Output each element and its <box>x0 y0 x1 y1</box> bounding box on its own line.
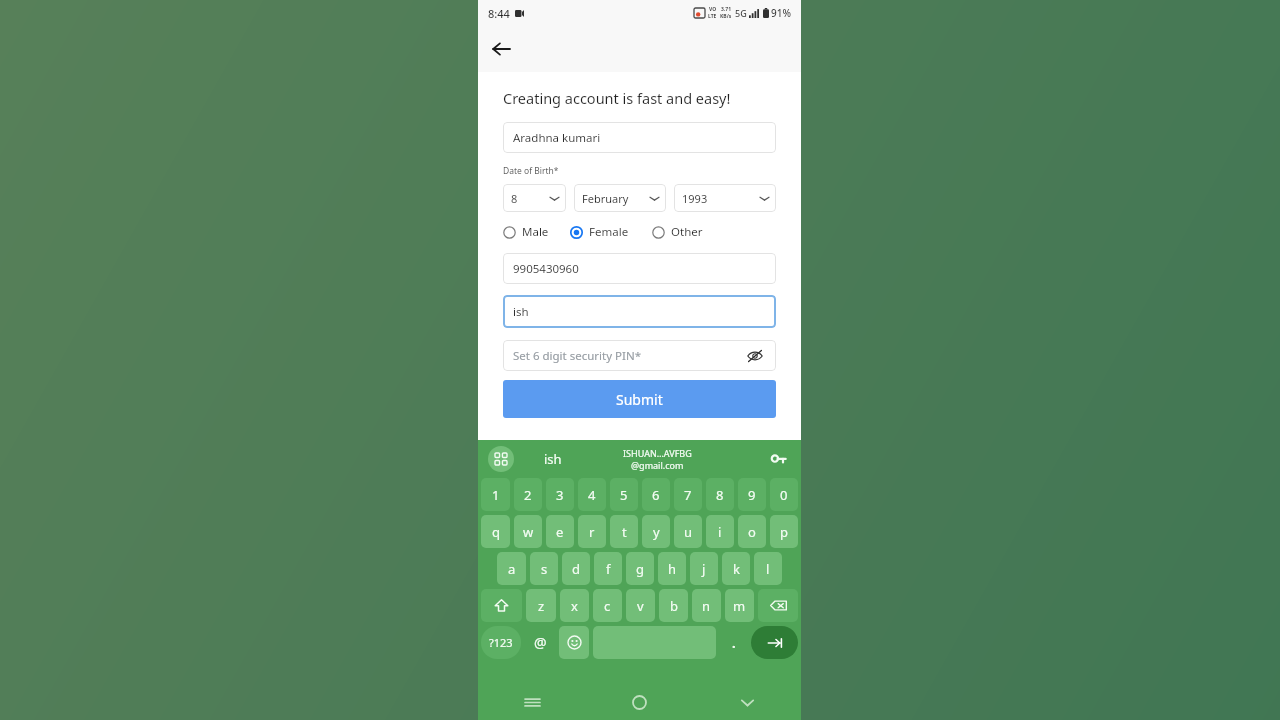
button[interactable]: f <box>594 552 622 585</box>
staticText: k <box>733 560 740 578</box>
button[interactable]: 1993 <box>674 184 776 212</box>
button[interactable]: 9 <box>738 478 766 511</box>
button[interactable]: t <box>610 515 638 548</box>
staticText: h <box>668 560 677 578</box>
staticText: w <box>523 523 534 541</box>
button[interactable]: q <box>481 515 510 548</box>
button[interactable]: Enter <box>751 626 798 659</box>
button[interactable]: 1 <box>481 478 510 511</box>
button[interactable]: v <box>626 589 655 622</box>
button[interactable]: y <box>642 515 670 548</box>
button[interactable]: Male <box>503 221 549 243</box>
staticText: d <box>572 560 580 578</box>
staticText: Submit <box>616 390 663 409</box>
button[interactable]: ish <box>514 440 592 478</box>
staticText: KB/s <box>720 13 732 20</box>
staticText: e <box>556 523 564 541</box>
staticText: o <box>748 523 756 541</box>
button[interactable]: ISHUAN…AVFBG <box>592 440 722 478</box>
button[interactable]: Aradhna kumari <box>503 122 776 153</box>
staticText: 91% <box>771 6 791 20</box>
button[interactable]: k <box>722 552 750 585</box>
staticText: Date of Birth* <box>503 165 559 177</box>
button[interactable]: Submit <box>503 380 776 418</box>
button[interactable]: u <box>674 515 702 548</box>
staticText: @gmail.com <box>631 459 684 471</box>
staticText: 5G <box>735 7 747 19</box>
staticText: m <box>733 597 746 615</box>
button[interactable]: Toolbar <box>488 446 514 472</box>
button[interactable]: l <box>754 552 782 585</box>
button[interactable]: h <box>658 552 686 585</box>
button[interactable]: Back <box>487 35 515 63</box>
button[interactable]: Recents <box>516 686 548 718</box>
button[interactable]: n <box>692 589 721 622</box>
button[interactable]: ish <box>503 295 776 328</box>
button[interactable]: x <box>560 589 589 622</box>
button[interactable]: @ <box>525 626 555 659</box>
button[interactable]: j <box>690 552 718 585</box>
button[interactable]: 9905430960 <box>503 253 776 284</box>
button[interactable]: 2 <box>514 478 542 511</box>
staticText: y <box>653 523 660 541</box>
staticText: f <box>606 560 611 578</box>
button[interactable]: 8 <box>706 478 734 511</box>
staticText: z <box>538 597 545 615</box>
staticText: p <box>780 523 788 541</box>
staticText: 2 <box>524 486 532 504</box>
button[interactable]: w <box>514 515 542 548</box>
button[interactable]: Female <box>570 221 629 243</box>
button[interactable]: d <box>562 552 590 585</box>
button[interactable]: o <box>738 515 766 548</box>
button[interactable]: Other <box>652 221 703 243</box>
button[interactable]: Set 6 digit security PIN* <box>503 340 776 371</box>
staticText: Male <box>522 224 549 240</box>
staticText: 3.71 <box>721 6 731 13</box>
staticText: 4 <box>588 486 596 504</box>
button[interactable]: Shift <box>481 589 522 622</box>
button[interactable]: 6 <box>642 478 670 511</box>
button[interactable]: e <box>546 515 574 548</box>
button[interactable]: February <box>574 184 666 212</box>
button[interactable]: b <box>659 589 688 622</box>
button[interactable]: Hide keyboard <box>731 686 763 718</box>
button[interactable]: 7 <box>674 478 702 511</box>
staticText: j <box>702 560 706 578</box>
button[interactable]: m <box>725 589 754 622</box>
staticText: 8:44 <box>488 6 510 21</box>
button[interactable]: g <box>626 552 654 585</box>
staticText: 8 <box>511 191 518 206</box>
button[interactable]: p <box>770 515 798 548</box>
staticText: i <box>718 523 722 541</box>
staticText: q <box>492 523 500 541</box>
button[interactable]: Emoji <box>559 626 589 659</box>
button[interactable]: Passwords <box>763 444 793 474</box>
staticText: r <box>589 523 595 541</box>
button[interactable]: 4 <box>578 478 606 511</box>
staticText: v <box>637 597 644 615</box>
button[interactable]: 3 <box>546 478 574 511</box>
button[interactable]: s <box>530 552 558 585</box>
button[interactable]: Home <box>623 686 655 718</box>
button[interactable]: z <box>526 589 556 622</box>
button[interactable]: 5 <box>610 478 638 511</box>
button[interactable]: 8 <box>503 184 566 212</box>
button[interactable]: c <box>593 589 622 622</box>
staticText: g <box>636 560 644 578</box>
button[interactable]: ?123 <box>481 626 521 659</box>
staticText: Set 6 digit security PIN* <box>513 348 642 364</box>
button[interactable]: Backspace <box>758 589 798 622</box>
button[interactable]: Show PIN <box>744 345 766 367</box>
button[interactable]: i <box>706 515 734 548</box>
staticText: @ <box>534 633 547 652</box>
staticText: ?123 <box>489 635 513 650</box>
staticText: t <box>622 523 627 541</box>
button[interactable]: a <box>497 552 526 585</box>
staticText: b <box>670 597 678 615</box>
staticText: ish <box>544 450 562 468</box>
button[interactable]: r <box>578 515 606 548</box>
staticText: Creating account is fast and easy! <box>503 88 731 108</box>
button[interactable]: 0 <box>770 478 798 511</box>
button[interactable]: . <box>720 626 747 659</box>
